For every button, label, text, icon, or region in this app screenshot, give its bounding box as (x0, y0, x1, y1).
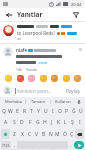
staticText: , (14, 142, 16, 149)
button[interactable]: . (68, 141, 73, 149)
button[interactable]: P (63, 107, 70, 116)
staticText: E (16, 108, 19, 115)
button[interactable]: Ş (69, 118, 76, 127)
button[interactable]: W (7, 107, 14, 116)
button[interactable]: H (41, 118, 48, 127)
staticText: F (29, 119, 32, 126)
staticText: K (57, 119, 61, 126)
button[interactable]: Ç (68, 129, 75, 139)
button[interactable]: Voice input (75, 97, 83, 106)
button[interactable]: Ü (77, 107, 84, 116)
staticText: D (20, 119, 24, 126)
staticText: niafe (16, 47, 28, 53)
staticText: Ç (70, 131, 74, 138)
button[interactable]: Y (35, 107, 42, 116)
button[interactable]: face2 (49, 73, 59, 83)
staticText: W (8, 108, 13, 115)
button[interactable]: L (62, 118, 69, 127)
button[interactable]: face4 (72, 73, 82, 83)
staticText: B (42, 131, 46, 138)
button[interactable]: face3 (61, 73, 71, 83)
staticText: A (4, 119, 8, 126)
staticText: .com (38, 60, 48, 65)
staticText: H (43, 119, 47, 126)
button[interactable]: Q (1, 107, 7, 116)
staticText: U (44, 108, 48, 115)
button[interactable]: Tamam (26, 97, 50, 106)
button[interactable]: Yanıtınızı yazın... (17, 88, 64, 94)
button[interactable]: Send (74, 141, 84, 149)
button[interactable]: Back (4, 10, 13, 19)
button[interactable]: hand (3, 73, 13, 83)
staticText: Tamam (31, 99, 45, 104)
button[interactable]: blossom (26, 73, 36, 83)
staticText: C (28, 131, 32, 138)
button[interactable]: ?123 (1, 141, 11, 149)
button[interactable]: F (26, 118, 34, 127)
staticText: N (49, 131, 53, 138)
staticText: Ş (71, 119, 74, 126)
button[interactable]: T (28, 107, 35, 116)
staticText: G (36, 119, 40, 126)
staticText: Y (37, 108, 40, 115)
staticText: Kullanıcı (55, 99, 71, 104)
staticText: to Liverpool Reds! (17, 30, 55, 36)
staticText: X (21, 131, 24, 138)
staticText: Paylaş (66, 88, 80, 94)
button[interactable]: I (49, 107, 56, 116)
button[interactable]: , (12, 141, 17, 149)
staticText: I (79, 119, 81, 126)
button[interactable]: S (10, 118, 18, 127)
button[interactable]: Filter (71, 10, 81, 20)
staticText: Yanıtlar (17, 10, 43, 19)
staticText: M (55, 131, 60, 138)
button[interactable]: face (38, 73, 48, 83)
staticText: Z (13, 131, 16, 138)
button[interactable]: B (40, 129, 47, 139)
staticText: Ö (63, 131, 67, 138)
staticText: 1dk (16, 67, 23, 72)
button[interactable]: N (47, 129, 54, 139)
staticText: Merhaba (5, 99, 22, 104)
staticText: L (64, 119, 67, 126)
staticText: J (51, 119, 53, 126)
staticText: Q (2, 108, 6, 115)
button[interactable]: V (33, 129, 40, 139)
button[interactable]: Kullanıcı (51, 97, 75, 106)
button[interactable]: Backspace (75, 129, 84, 139)
staticText: V (35, 131, 39, 138)
button[interactable]: fire (15, 73, 25, 83)
button[interactable]: C (26, 129, 33, 139)
button[interactable]: G (34, 118, 41, 127)
button[interactable]: Z (10, 129, 18, 139)
button[interactable]: A (2, 118, 10, 127)
button[interactable]: U (42, 107, 49, 116)
staticText: Ğ (72, 108, 76, 115)
button[interactable]: O (56, 107, 63, 116)
button[interactable]: E (14, 107, 21, 116)
staticText: Ü (79, 108, 83, 115)
button[interactable]: Paylaş (64, 86, 82, 96)
button[interactable]: R (21, 107, 28, 116)
button[interactable]: I (76, 118, 83, 127)
staticText: T (30, 108, 33, 115)
button[interactable]: Ğ (70, 107, 77, 116)
staticText: S (13, 119, 16, 126)
staticText: I (52, 108, 54, 115)
button[interactable]: M (54, 129, 61, 139)
staticText: ?123 (2, 143, 10, 148)
button[interactable]: D (18, 118, 26, 127)
staticText: Yanıtınızı yazın... (17, 88, 52, 94)
staticText: P (65, 108, 69, 115)
button[interactable]: K (55, 118, 62, 127)
button[interactable]: Merhaba (2, 97, 25, 106)
button[interactable]: Shift (1, 129, 10, 139)
button[interactable]: J (48, 118, 55, 127)
staticText: Yanıtla (26, 67, 37, 72)
staticText: R (23, 108, 27, 115)
button[interactable]: Ö (61, 129, 68, 139)
button[interactable]: X (18, 129, 26, 139)
staticText: . (70, 142, 72, 149)
staticText: O (58, 108, 62, 115)
